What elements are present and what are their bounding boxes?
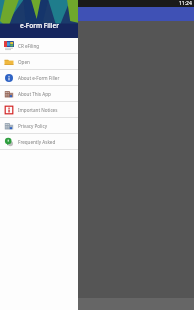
button[interactable]: Open <box>0 54 78 69</box>
staticText: CR eFiling <box>28 10 60 19</box>
button[interactable]: About This App <box>0 86 78 101</box>
button[interactable]: Frequently Asked Questions <box>0 134 78 149</box>
staticText: Privacy Policy <box>18 123 47 129</box>
staticText: Important Notices <box>18 107 58 113</box>
staticText: CR eFiling <box>18 43 40 49</box>
button[interactable]: Important Notices <box>0 102 78 117</box>
button[interactable]: CR eFiling <box>0 38 78 53</box>
button[interactable]: Back <box>0 7 14 21</box>
staticText: Frequently Asked Questions <box>18 139 75 145</box>
staticText: Open <box>18 59 30 65</box>
staticText: About This App <box>18 91 51 97</box>
button[interactable]: About e-Form Filler <box>0 70 78 85</box>
staticText: 11:24 <box>179 0 192 7</box>
button[interactable]: Privacy Policy <box>0 118 78 133</box>
staticText: e-Form Filler <box>20 21 59 30</box>
staticText: About e-Form Filler <box>18 75 60 81</box>
